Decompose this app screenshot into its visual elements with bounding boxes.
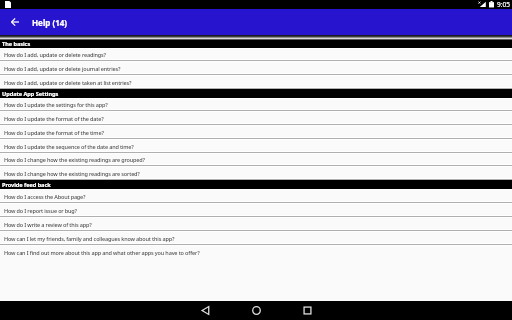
button[interactable]: How can I let my friends, family and col… xyxy=(0,231,512,245)
button[interactable]: How do I update the format of the date? xyxy=(0,111,512,125)
button[interactable]: How do I add, update or delete journal e… xyxy=(0,61,512,75)
staticText: How do I update the format of the date? xyxy=(4,115,104,122)
button[interactable]: Back xyxy=(188,301,223,320)
staticText: How do I change how the existing reading… xyxy=(4,170,140,177)
button[interactable]: Back xyxy=(2,9,28,35)
staticText: Update App Settings xyxy=(2,90,59,98)
button[interactable]: Recents xyxy=(290,301,325,320)
staticText: How can I find out more about this app a… xyxy=(4,249,200,256)
button[interactable]: How do I change how the existing reading… xyxy=(0,153,512,166)
button[interactable]: How do I add, update or delete taken at … xyxy=(0,75,512,89)
staticText: How do I update the settings for this ap… xyxy=(4,101,108,108)
button[interactable]: How can I find out more about this app a… xyxy=(0,245,512,259)
staticText: How do I write a review of this app? xyxy=(4,221,92,228)
staticText: How do I add, update or delete taken at … xyxy=(4,79,132,86)
staticText: How do I access the About page? xyxy=(4,193,86,200)
staticText: How do I update the sequence of the date… xyxy=(4,143,134,150)
button[interactable]: How do I report issue or bug? xyxy=(0,203,512,217)
staticText: Help (14) xyxy=(32,17,67,28)
button[interactable]: How do I access the About page? xyxy=(0,189,512,203)
button[interactable]: How do I update the sequence of the date… xyxy=(0,139,512,153)
staticText: How do I change how the existing reading… xyxy=(4,156,145,163)
button[interactable]: How do I update the settings for this ap… xyxy=(0,98,512,111)
staticText: How do I update the format of the time? xyxy=(4,129,104,136)
staticText: How do I add, update or delete readings? xyxy=(4,51,106,58)
staticText: 9:05 xyxy=(497,0,510,9)
button[interactable]: How do I write a review of this app? xyxy=(0,217,512,231)
button[interactable]: Home xyxy=(239,301,274,320)
staticText: How do I add, update or delete journal e… xyxy=(4,65,121,72)
button[interactable]: How do I change how the existing reading… xyxy=(0,166,512,180)
staticText: How can I let my friends, family and col… xyxy=(4,235,175,242)
button[interactable]: How do I update the format of the time? xyxy=(0,125,512,139)
staticText: The basics xyxy=(2,40,31,48)
button[interactable]: How do I add, update or delete readings? xyxy=(0,48,512,61)
staticText: Provide feed back xyxy=(2,181,51,189)
staticText: How do I report issue or bug? xyxy=(4,207,77,214)
